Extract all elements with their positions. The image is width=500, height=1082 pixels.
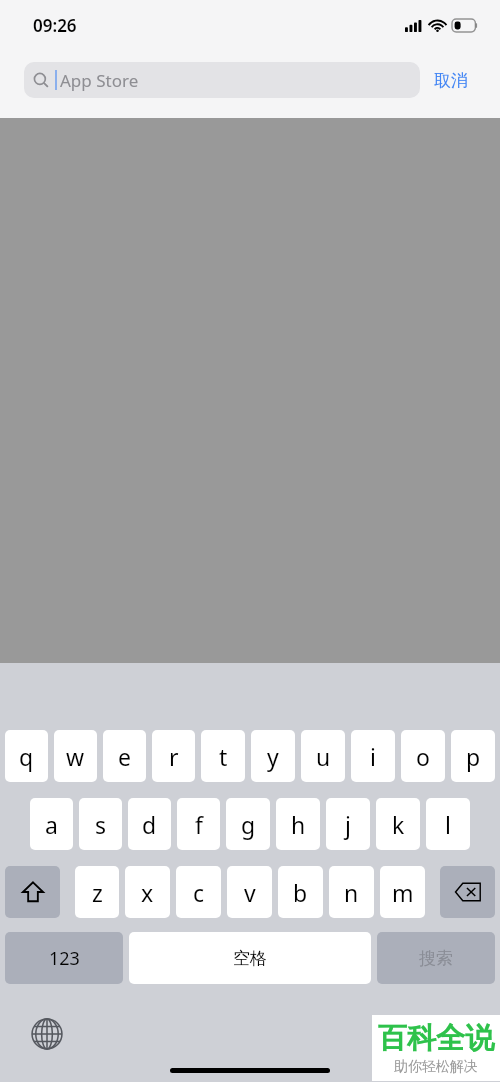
staticText: 百科全说 bbox=[378, 1020, 494, 1057]
staticText: a bbox=[45, 809, 58, 840]
button[interactable]: h bbox=[276, 798, 320, 850]
staticText: o bbox=[416, 741, 430, 772]
button[interactable]: 空格 bbox=[129, 932, 371, 984]
staticText: e bbox=[118, 741, 131, 772]
staticText: c bbox=[193, 877, 205, 908]
button[interactable]: o bbox=[401, 730, 445, 782]
button[interactable]: Shift bbox=[5, 866, 60, 918]
button[interactable]: y bbox=[251, 730, 295, 782]
staticText: App Store bbox=[60, 69, 139, 92]
button[interactable]: i bbox=[351, 730, 395, 782]
staticText: k bbox=[392, 809, 405, 840]
button[interactable]: Backspace bbox=[440, 866, 495, 918]
staticText: d bbox=[142, 809, 157, 840]
button[interactable]: x bbox=[125, 866, 170, 918]
staticText: m bbox=[392, 877, 414, 908]
button[interactable]: w bbox=[54, 730, 97, 782]
button[interactable]: d bbox=[128, 798, 171, 850]
button[interactable]: c bbox=[176, 866, 221, 918]
button[interactable]: a bbox=[30, 798, 73, 850]
button[interactable]: l bbox=[426, 798, 470, 850]
button[interactable]: q bbox=[5, 730, 48, 782]
staticText: h bbox=[291, 809, 306, 840]
button[interactable]: j bbox=[326, 798, 370, 850]
button[interactable]: u bbox=[301, 730, 345, 782]
button[interactable]: Switch keyboard language bbox=[26, 1013, 68, 1055]
staticText: 09:26 bbox=[33, 14, 77, 37]
staticText: w bbox=[66, 741, 85, 772]
staticText: x bbox=[141, 877, 154, 908]
button[interactable]: g bbox=[226, 798, 270, 850]
button[interactable]: m bbox=[380, 866, 425, 918]
staticText: p bbox=[466, 741, 481, 772]
staticText: v bbox=[244, 877, 256, 908]
staticText: t bbox=[219, 741, 228, 772]
staticText: b bbox=[293, 877, 308, 908]
staticText: j bbox=[345, 809, 351, 840]
staticText: 搜索 bbox=[419, 948, 453, 969]
button[interactable]: b bbox=[278, 866, 323, 918]
button[interactable]: s bbox=[79, 798, 122, 850]
staticText: r bbox=[169, 741, 179, 772]
staticText: z bbox=[92, 877, 103, 908]
staticText: s bbox=[95, 809, 107, 840]
staticText: l bbox=[445, 809, 451, 840]
button[interactable]: n bbox=[329, 866, 374, 918]
staticText: i bbox=[370, 741, 376, 772]
button[interactable]: App Store bbox=[24, 62, 420, 98]
staticText: 助你轻松解决 bbox=[394, 1058, 478, 1076]
button[interactable]: 取消 bbox=[432, 64, 470, 97]
button[interactable]: f bbox=[177, 798, 220, 850]
staticText: 取消 bbox=[434, 70, 468, 91]
button[interactable]: p bbox=[451, 730, 495, 782]
staticText: 123 bbox=[49, 946, 80, 971]
button[interactable]: 搜索 bbox=[377, 932, 495, 984]
staticText: g bbox=[241, 809, 256, 840]
button[interactable]: e bbox=[103, 730, 146, 782]
staticText: f bbox=[195, 809, 203, 840]
staticText: q bbox=[19, 741, 34, 772]
button[interactable]: k bbox=[376, 798, 420, 850]
staticText: n bbox=[344, 877, 359, 908]
button[interactable]: v bbox=[227, 866, 272, 918]
staticText: 空格 bbox=[233, 948, 267, 969]
button[interactable]: r bbox=[152, 730, 195, 782]
staticText: u bbox=[316, 741, 331, 772]
staticText: y bbox=[267, 741, 279, 772]
button[interactable]: t bbox=[201, 730, 245, 782]
button[interactable]: 123 bbox=[5, 932, 123, 984]
button[interactable]: z bbox=[75, 866, 119, 918]
